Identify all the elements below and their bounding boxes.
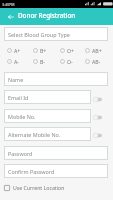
button[interactable]: A+ <box>7 47 31 54</box>
button[interactable]: B+ <box>33 47 57 54</box>
staticText: B- <box>40 58 46 65</box>
button[interactable]: AB- <box>85 58 109 65</box>
button[interactable]: O+ <box>60 47 84 54</box>
button[interactable]: O- <box>60 58 84 65</box>
button[interactable]: Password <box>4 146 108 160</box>
button[interactable]: Email Id <box>4 90 91 104</box>
staticText: Alternate Mobile No. <box>8 131 61 138</box>
staticText: Email Id <box>8 94 29 101</box>
staticText: Name <box>8 76 24 83</box>
button[interactable]: Confirm Password <box>4 164 108 178</box>
staticText: Donor Registration <box>18 11 76 20</box>
staticText: Mobile No. <box>8 113 36 120</box>
staticText: B+ <box>40 47 47 54</box>
staticText: Confirm Password <box>8 168 55 175</box>
button[interactable]: Back <box>5 8 16 25</box>
staticText: Password <box>8 150 33 157</box>
button[interactable]: Toggle <box>93 133 102 138</box>
staticText: AB- <box>92 58 101 65</box>
staticText: Select Blood Group Type <box>8 31 70 38</box>
button[interactable]: Select Blood Group Type <box>4 27 108 41</box>
staticText: A+ <box>14 47 21 54</box>
button[interactable]: AB+ <box>85 47 109 54</box>
button[interactable]: Toggle <box>93 97 102 102</box>
button[interactable]: Name <box>4 72 108 86</box>
staticText: AB+ <box>92 47 102 54</box>
staticText: 3:40PM <box>2 2 15 7</box>
staticText: O- <box>67 58 73 65</box>
button[interactable]: B- <box>33 58 57 65</box>
button[interactable]: Use Current Location <box>4 184 65 191</box>
button[interactable]: Mobile No. <box>4 109 91 123</box>
button[interactable]: Alternate Mobile No. <box>4 127 91 141</box>
staticText: A- <box>14 58 19 65</box>
staticText: O+ <box>67 47 75 54</box>
staticText: Use Current Location <box>13 184 65 191</box>
button[interactable]: Toggle <box>93 115 102 120</box>
button[interactable]: A- <box>7 58 31 65</box>
